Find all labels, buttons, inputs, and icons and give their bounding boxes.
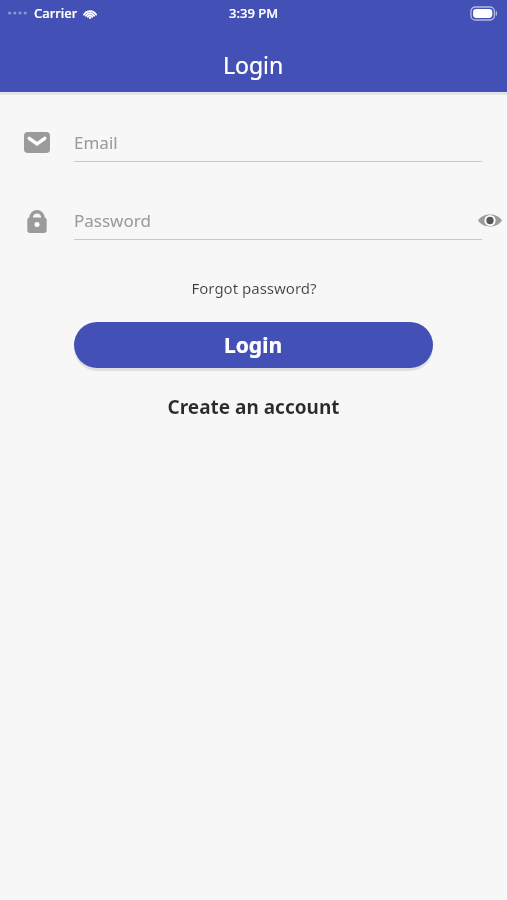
staticText: Login xyxy=(223,49,284,80)
button[interactable]: Password xyxy=(0,201,507,254)
staticText: Email xyxy=(74,131,507,154)
button[interactable]: Forgot password? xyxy=(181,274,327,302)
button[interactable]: Email xyxy=(0,123,507,176)
staticText: 3:39 PM xyxy=(229,4,279,22)
button[interactable]: Show password xyxy=(473,203,507,237)
staticText: Password xyxy=(74,209,473,232)
button[interactable]: Login xyxy=(74,322,433,368)
staticText: Create an account xyxy=(167,394,340,420)
button[interactable]: Create an account xyxy=(155,389,352,425)
staticText: Forgot password? xyxy=(191,278,317,298)
staticText: Login xyxy=(224,331,283,360)
staticText: Carrier xyxy=(34,4,78,22)
